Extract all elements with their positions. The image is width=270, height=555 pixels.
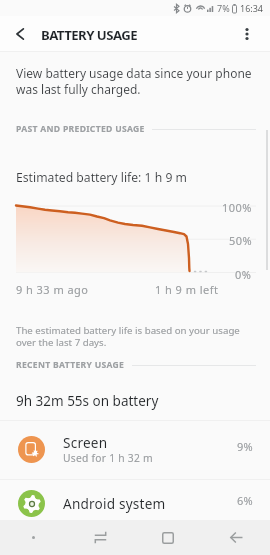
button[interactable]: Screen: [0, 422, 270, 476]
staticText: 9 h 33 m ago: [16, 282, 89, 297]
staticText: 9h 32m 55s on battery: [16, 392, 159, 410]
staticText: Used for 1 h 32 m: [63, 451, 153, 465]
staticText: BATTERY USAGE: [41, 26, 138, 44]
staticText: RECENT BATTERY USAGE: [16, 359, 125, 371]
staticText: 9%: [237, 439, 253, 454]
button[interactable]: Back: [202, 520, 270, 555]
staticText: 6%: [237, 493, 253, 508]
button[interactable]: Recent apps: [67, 520, 134, 555]
staticText: Screen: [63, 433, 108, 452]
button[interactable]: Home: [134, 520, 202, 555]
button[interactable]: Android system: [0, 476, 270, 530]
staticText: 50%: [229, 233, 253, 248]
staticText: 7%: [217, 2, 230, 14]
staticText: View battery usage data since your phone…: [16, 65, 252, 98]
button[interactable]: More options: [233, 20, 261, 48]
staticText: 16:34: [240, 2, 264, 14]
staticText: 100%: [222, 200, 252, 215]
button[interactable]: Navigate up: [6, 20, 34, 48]
staticText: Android system: [63, 494, 166, 513]
staticText: PAST AND PREDICTED USAGE: [16, 123, 145, 135]
staticText: 0%: [235, 267, 252, 282]
staticText: Estimated battery life: 1 h 9 m: [16, 169, 187, 186]
staticText: 1 h 9 m left: [155, 282, 219, 297]
staticText: The estimated battery life is based on y…: [16, 324, 240, 349]
